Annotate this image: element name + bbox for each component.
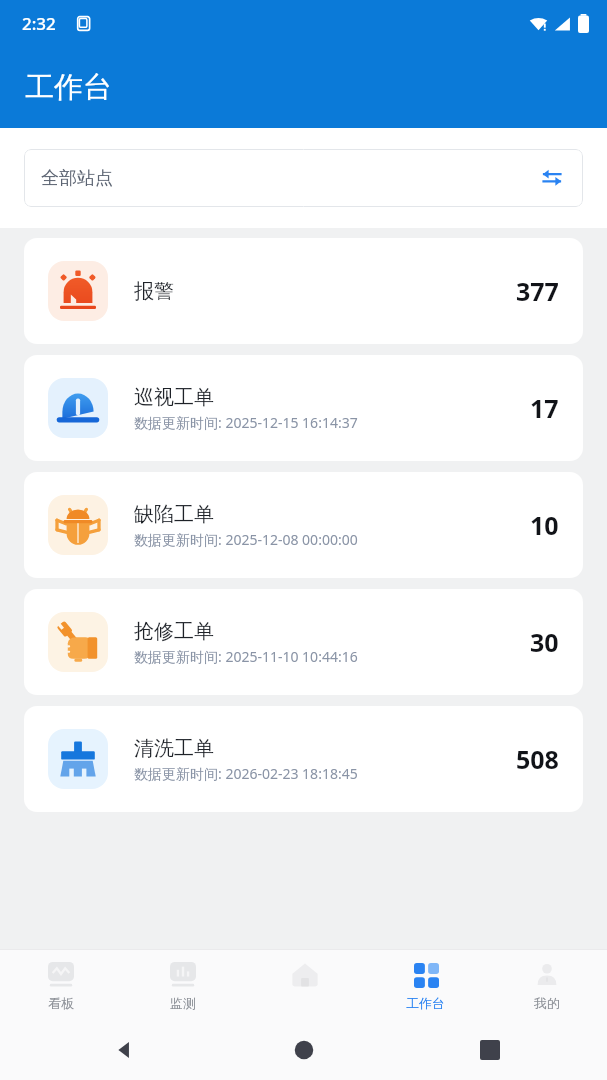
button[interactable]: 工作台 xyxy=(365,950,486,1020)
button[interactable]: 监测 xyxy=(122,950,244,1020)
staticText: 数据更新时间: 2025-12-08 00:00:00 xyxy=(134,530,358,549)
button[interactable]: 我的 xyxy=(486,950,607,1020)
staticText: 全部站点 xyxy=(41,167,113,190)
staticText: 数据更新时间: 2025-11-10 10:44:16 xyxy=(134,647,358,666)
staticText: 数据更新时间: 2025-12-15 16:14:37 xyxy=(134,413,358,432)
button[interactable]: Back xyxy=(108,1033,142,1067)
staticText: 10 xyxy=(530,508,559,542)
button[interactable]: 巡视工单 xyxy=(24,355,583,461)
staticText: 缺陷工单 xyxy=(134,502,214,527)
staticText: 报警 xyxy=(134,279,174,304)
staticText: 巡视工单 xyxy=(134,385,214,410)
staticText: 工作台 xyxy=(406,995,445,1011)
staticText: 我的 xyxy=(534,995,560,1011)
button[interactable]: Home xyxy=(287,1033,321,1067)
staticText: 清洗工单 xyxy=(134,736,214,761)
staticText: 监测 xyxy=(170,995,196,1011)
staticText: 抢修工单 xyxy=(134,619,214,644)
staticText: 30 xyxy=(530,625,559,659)
button[interactable]: 看板 xyxy=(0,950,122,1020)
staticText: 看板 xyxy=(48,995,74,1011)
staticText: 17 xyxy=(530,391,559,425)
staticText: 508 xyxy=(516,742,559,776)
button[interactable]: 清洗工单 xyxy=(24,706,583,812)
button[interactable]: 抢修工单 xyxy=(24,589,583,695)
staticText: 377 xyxy=(516,274,559,308)
staticText: 2:32 xyxy=(22,12,56,35)
button[interactable]: Home xyxy=(244,950,365,1020)
button[interactable]: 报警 xyxy=(24,238,583,344)
staticText: 工作台 xyxy=(25,69,112,106)
button[interactable]: Recents xyxy=(473,1033,507,1067)
button[interactable]: 全部站点 xyxy=(24,149,583,207)
staticText: 数据更新时间: 2026-02-23 18:18:45 xyxy=(134,764,358,783)
button[interactable]: 缺陷工单 xyxy=(24,472,583,578)
button[interactable]: Switch site xyxy=(537,163,567,193)
